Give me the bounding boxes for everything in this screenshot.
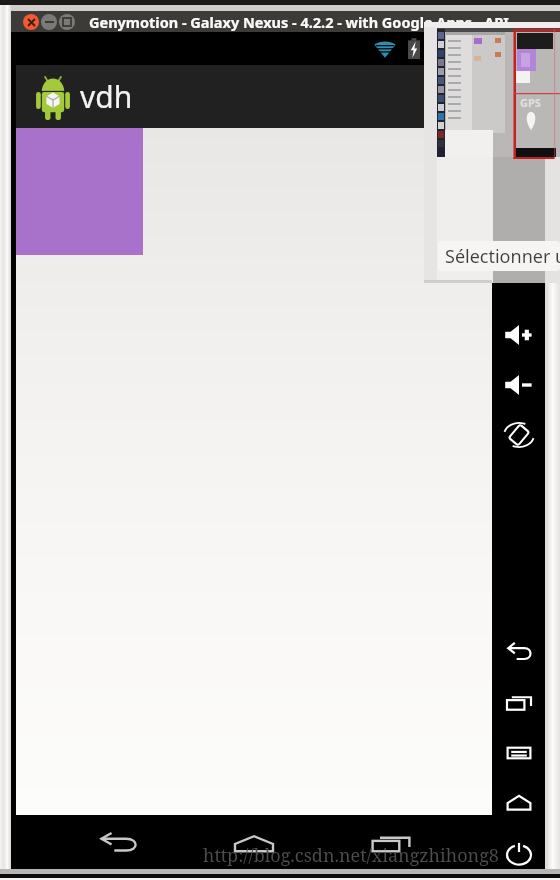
staticText: http://blog.csdn.net/xiangzhihong8 (203, 843, 499, 868)
button[interactable]: Battery (404, 37, 424, 61)
button[interactable]: Home (502, 786, 536, 820)
button[interactable]: Home (219, 824, 289, 864)
button[interactable]: Minimize (41, 14, 57, 30)
staticText: GPS (520, 95, 541, 110)
button[interactable]: Maximize (59, 14, 75, 30)
button[interactable]: WiFi (373, 38, 397, 62)
button[interactable]: Sélectionner un (438, 241, 560, 271)
button[interactable]: Recents (356, 824, 426, 864)
button[interactable]: Volume down (502, 368, 536, 402)
staticText: Genymotion - Galaxy Nexus - 4.2.2 - with… (89, 12, 509, 31)
button[interactable]: Back (83, 824, 153, 864)
button[interactable]: Recents (502, 686, 536, 720)
button[interactable]: Close (23, 14, 39, 30)
staticText: Sélectionner un (445, 244, 560, 269)
button[interactable]: Volume up (502, 318, 536, 352)
button[interactable]: Back (502, 636, 536, 670)
button[interactable]: Power (502, 836, 536, 870)
staticText: vdh (80, 76, 133, 117)
button[interactable]: Rotate (502, 418, 536, 452)
button[interactable]: Menu (502, 736, 536, 770)
button[interactable]: vdh (16, 65, 492, 128)
